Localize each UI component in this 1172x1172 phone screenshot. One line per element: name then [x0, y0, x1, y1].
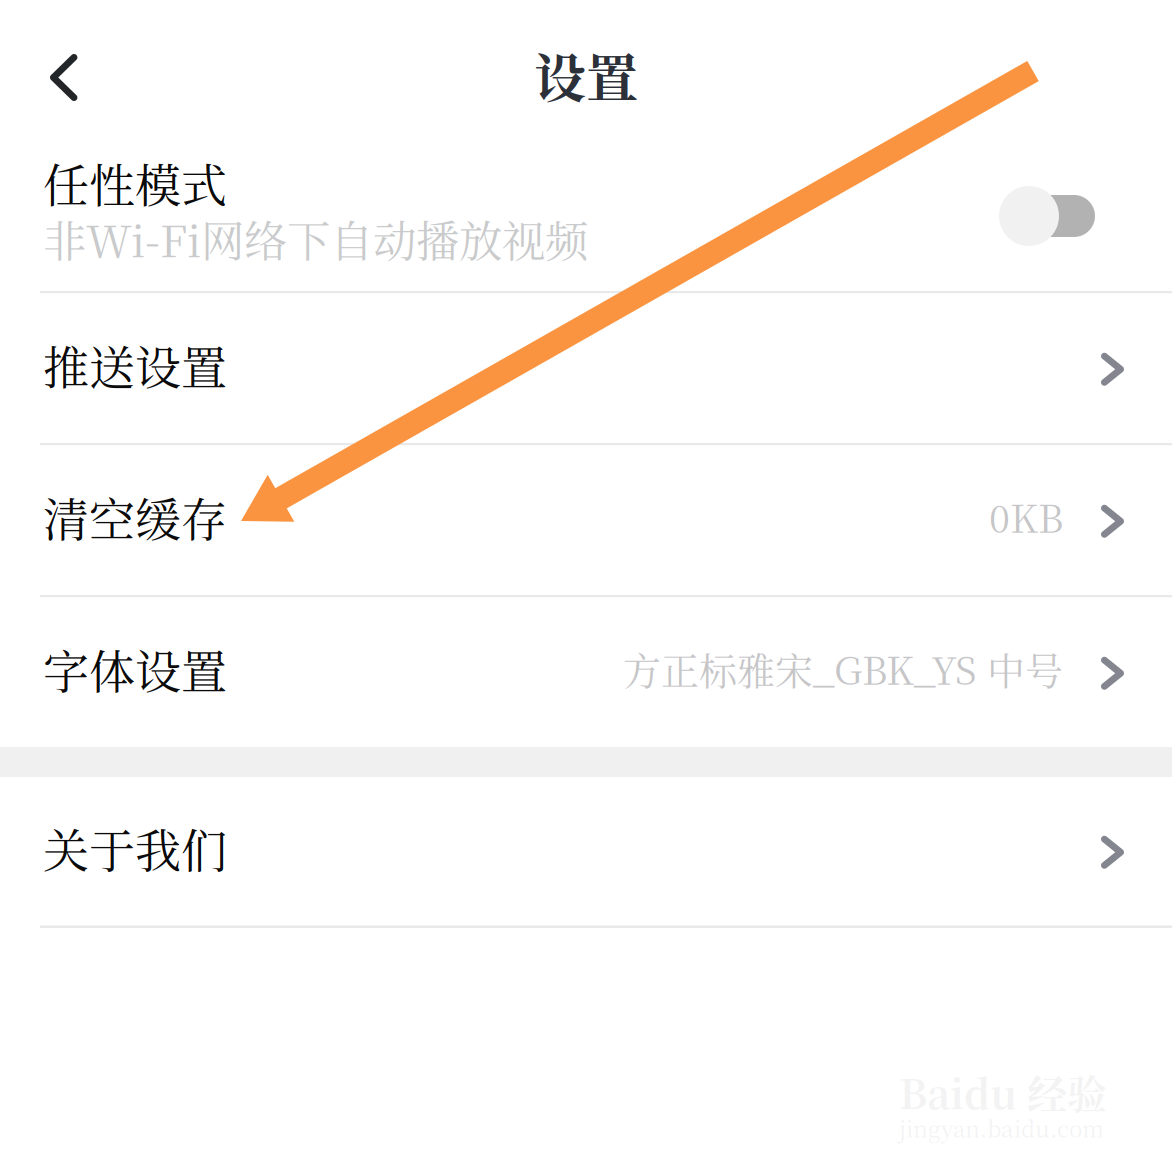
button[interactable]: 关于我们: [0, 777, 1172, 925]
button[interactable]: 推送设置: [0, 293, 1172, 443]
staticText: 设置: [534, 38, 638, 112]
button[interactable]: 任性模式: [0, 130, 1172, 291]
staticText: 方正标雅宋_GBK_YS 中号: [623, 641, 1063, 695]
staticText: Baidu 经验: [899, 1063, 1107, 1120]
staticText: 非Wi-Fi网络下自动播放视频: [43, 207, 588, 270]
button[interactable]: Back: [0, 0, 140, 130]
button[interactable]: 字体设置: [0, 597, 1172, 747]
staticText: 关于我们: [43, 814, 227, 880]
button[interactable]: 清空缓存: [0, 445, 1172, 595]
staticText: 0KB: [989, 489, 1063, 543]
staticText: 清空缓存: [43, 483, 227, 549]
staticText: 任性模式: [43, 149, 227, 215]
staticText: 字体设置: [43, 635, 227, 701]
staticText: 推送设置: [43, 331, 227, 397]
staticText: jingyan.baidu.com: [899, 1111, 1104, 1144]
